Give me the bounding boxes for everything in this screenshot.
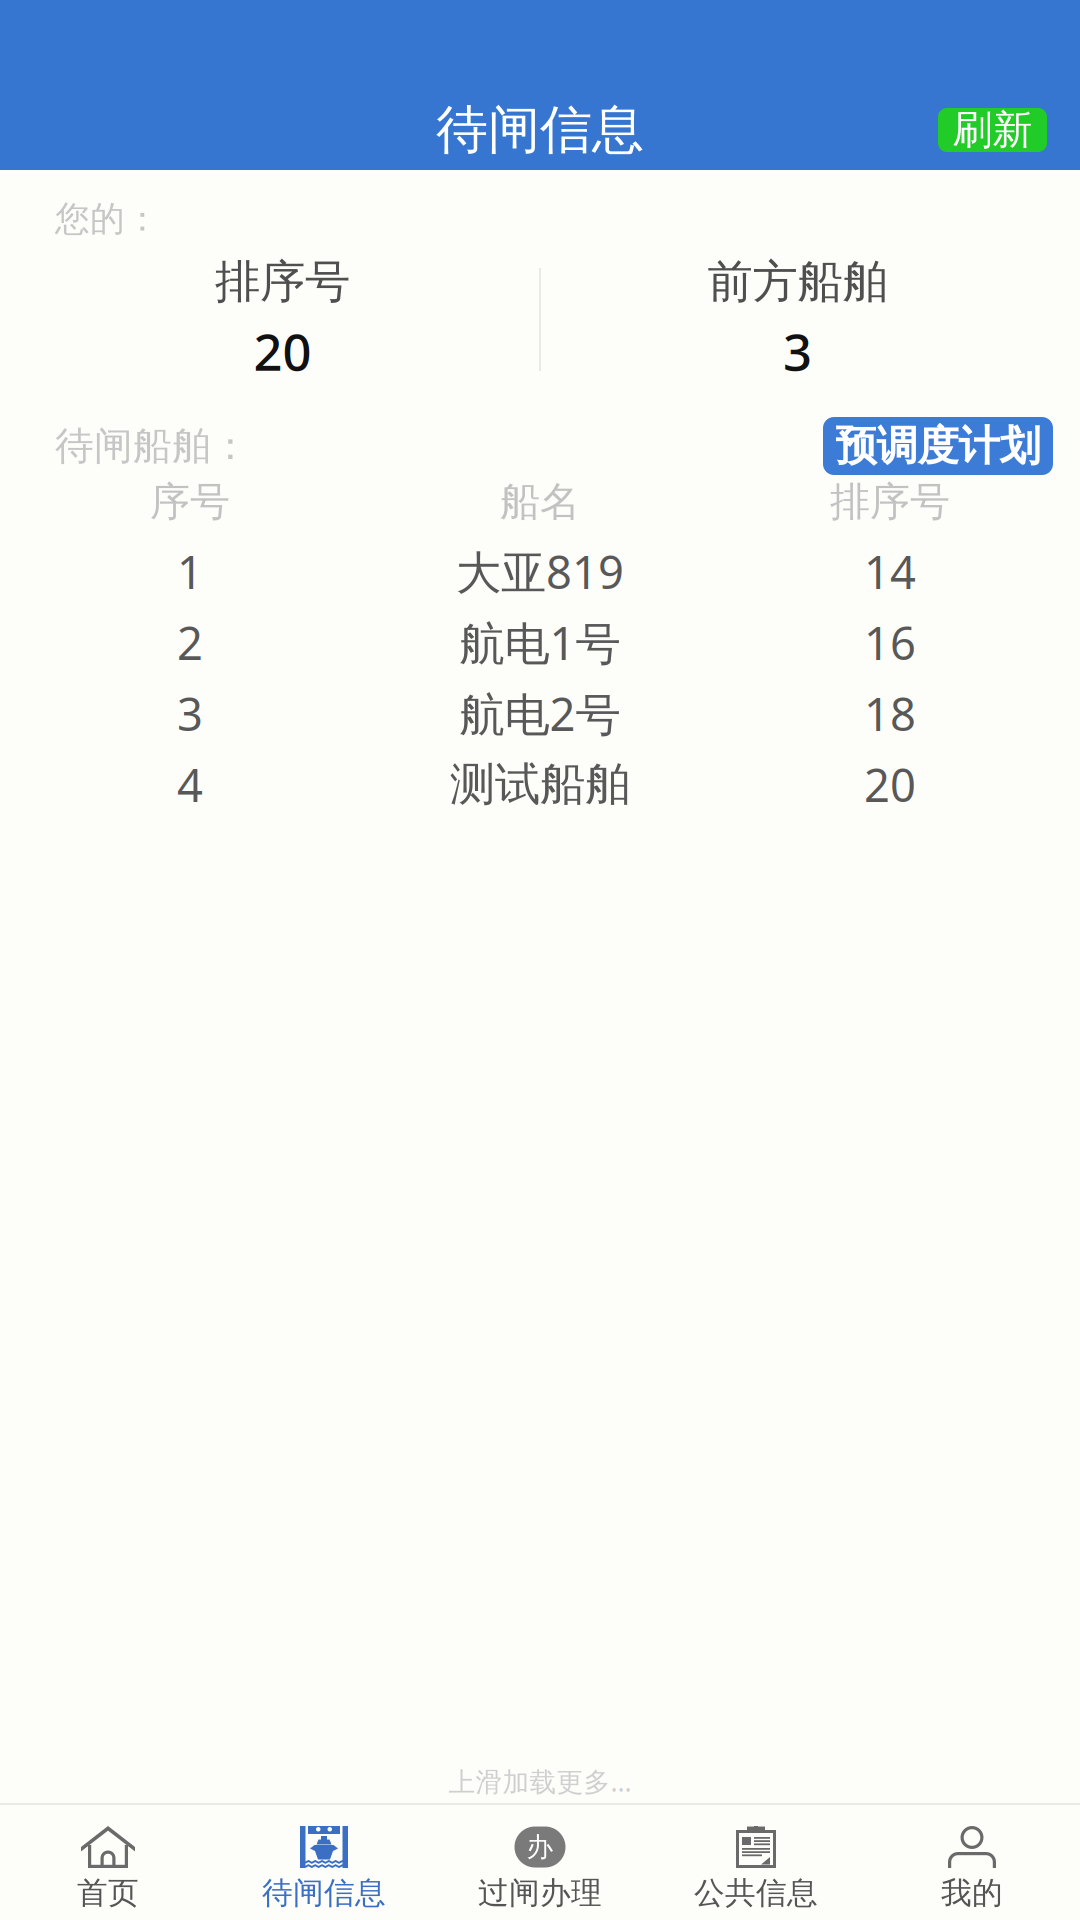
button[interactable]: 首页: [0, 1805, 216, 1920]
button[interactable]: 预调度计划: [823, 417, 1053, 475]
staticText: 序号: [150, 477, 230, 526]
staticText: 航电2号: [459, 683, 620, 744]
staticText: 船名: [500, 477, 580, 526]
staticText: 航电1号: [459, 612, 620, 673]
staticText: 20: [253, 317, 311, 385]
staticText: 20: [864, 754, 916, 815]
staticText: 16: [864, 612, 916, 673]
staticText: 待闸信息: [436, 98, 644, 162]
button[interactable]: 刷新: [938, 108, 1047, 152]
staticText: 首页: [77, 1874, 139, 1912]
button[interactable]: 我的: [864, 1805, 1080, 1920]
staticText: 您的：: [55, 198, 160, 240]
button[interactable]: 待闸信息: [216, 1805, 432, 1920]
staticText: 刷新: [952, 105, 1032, 154]
staticText: 3: [783, 317, 812, 385]
staticText: 4: [177, 754, 203, 815]
staticText: 预调度计划: [835, 421, 1040, 471]
staticText: 排序号: [215, 254, 350, 310]
staticText: 办: [526, 1831, 553, 1863]
staticText: 我的: [941, 1874, 1003, 1912]
staticText: 过闸办理: [478, 1874, 602, 1912]
button[interactable]: 办: [432, 1805, 648, 1920]
staticText: 3: [177, 683, 203, 744]
staticText: 待闸船舶：: [55, 422, 250, 470]
staticText: 排序号: [830, 477, 950, 526]
staticText: 大亚819: [456, 541, 624, 602]
staticText: 待闸信息: [262, 1874, 386, 1912]
staticText: 测试船舶: [450, 757, 630, 812]
staticText: 18: [864, 683, 916, 744]
staticText: 公共信息: [694, 1874, 818, 1912]
staticText: 2: [177, 612, 203, 673]
button[interactable]: 公共信息: [648, 1805, 864, 1920]
staticText: 14: [864, 541, 916, 602]
staticText: 1: [177, 541, 203, 602]
staticText: 上滑加载更多...: [448, 1764, 631, 1799]
staticText: 前方船舶: [707, 254, 887, 310]
